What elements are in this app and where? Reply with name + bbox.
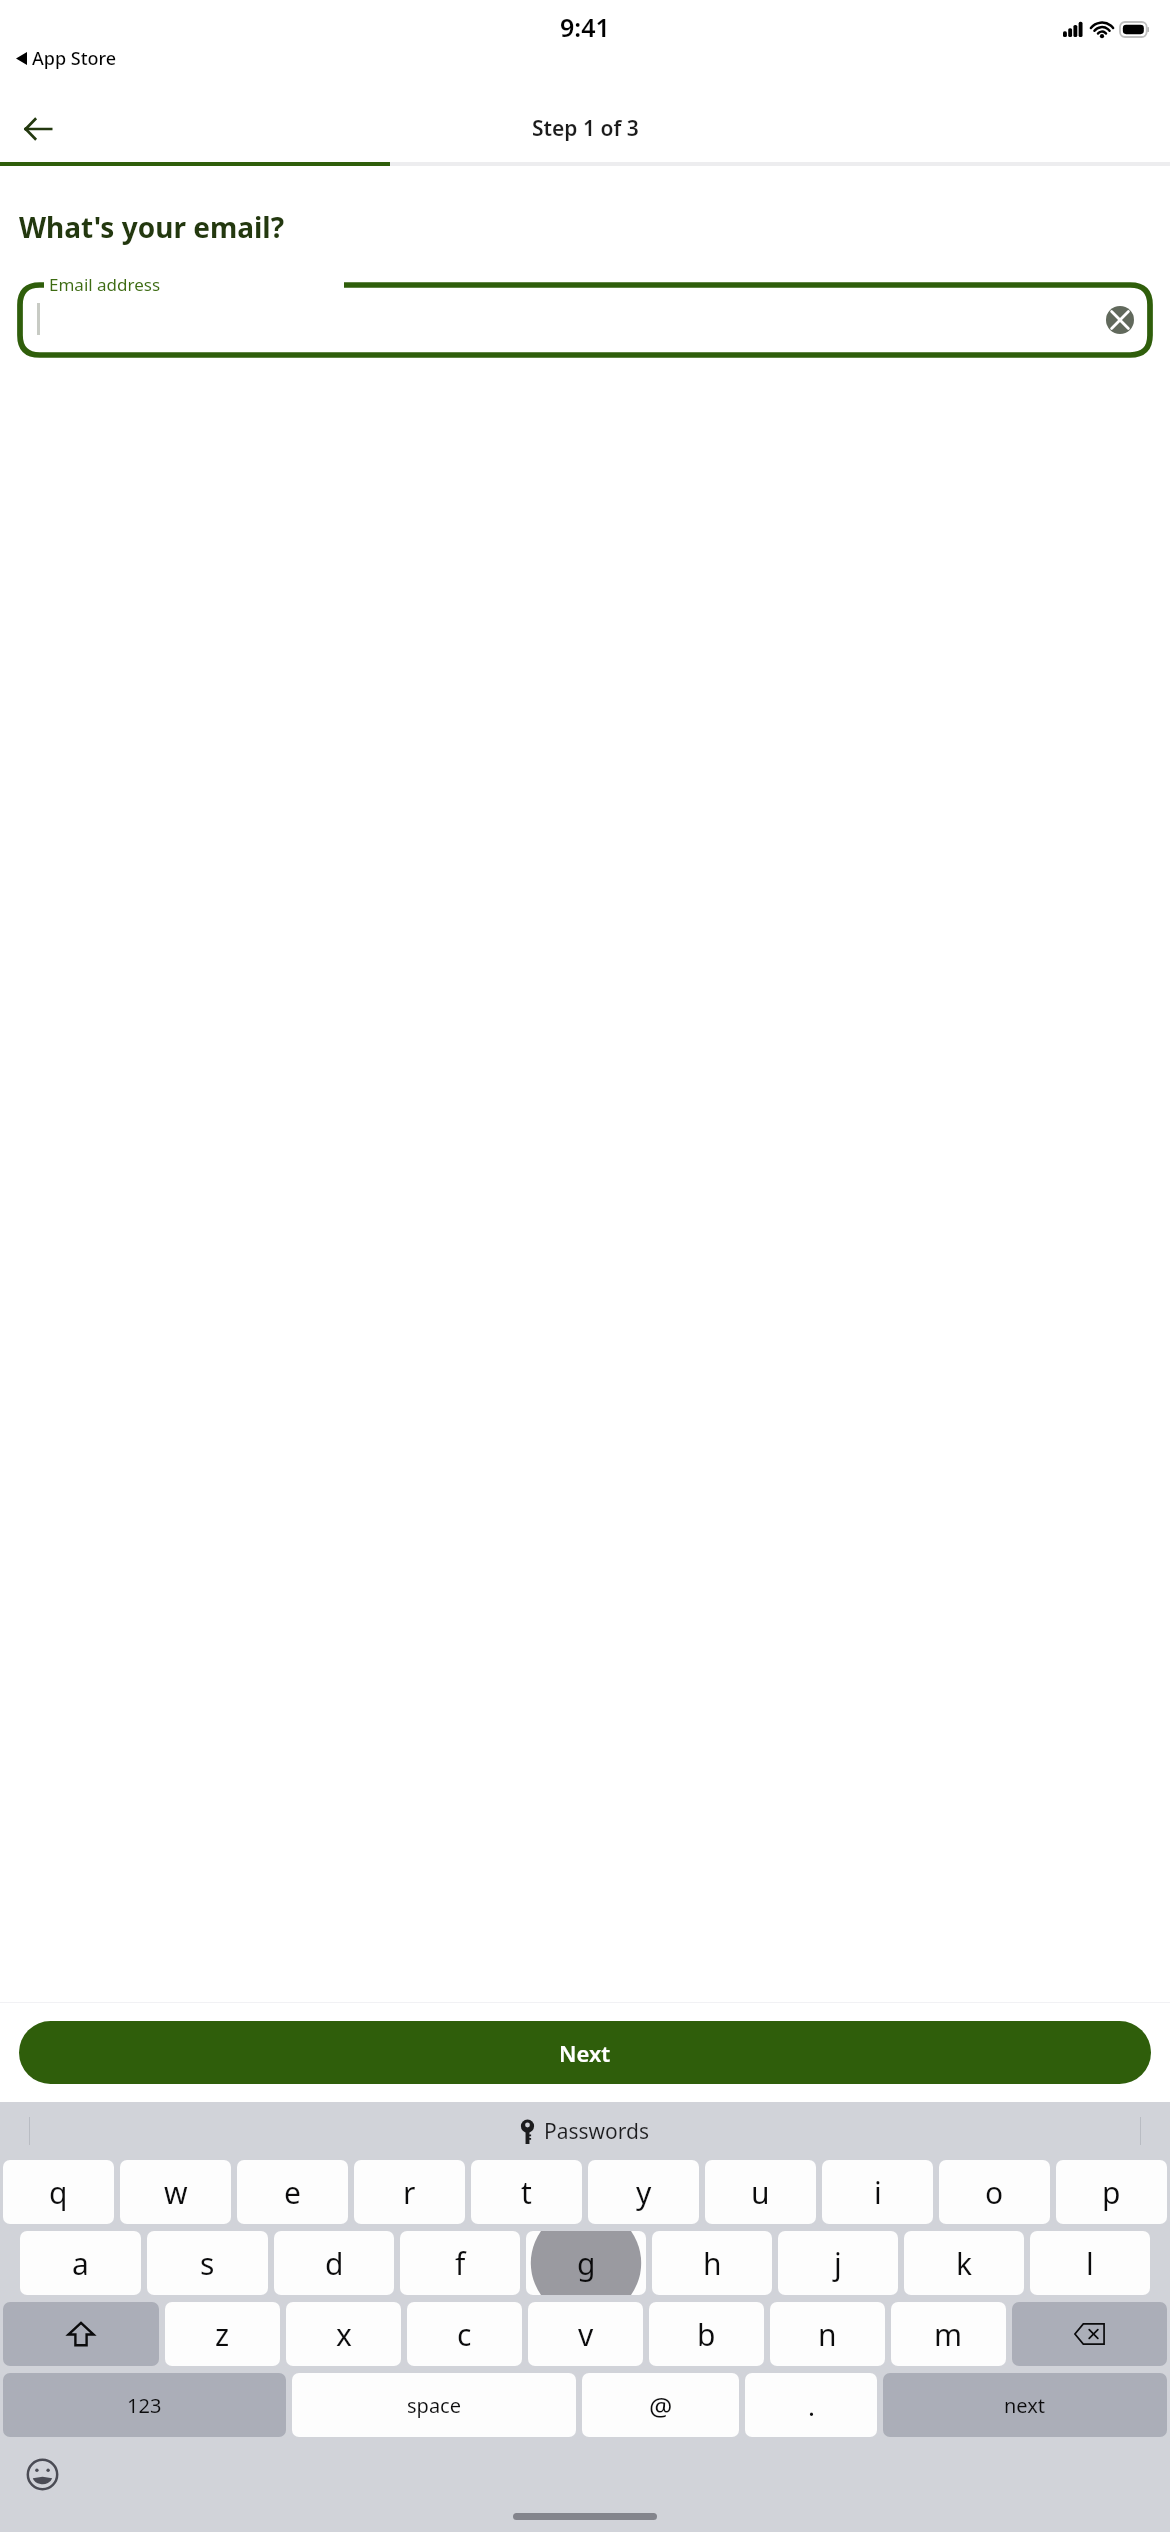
button[interactable]: s [147,2231,268,2295]
button[interactable]: j [778,2231,898,2295]
button[interactable]: e [237,2160,348,2224]
staticText: w [164,2172,188,2213]
staticText: n [818,2314,837,2355]
button[interactable]: g [526,2231,646,2295]
button[interactable]: z [165,2302,280,2366]
staticText: Passwords [544,2117,650,2146]
staticText: r [403,2172,416,2213]
staticText: s [200,2243,215,2284]
staticText: 9:41 [560,10,610,44]
button[interactable]: k [904,2231,1024,2295]
button[interactable]: x [286,2302,401,2366]
button[interactable]: @ [582,2373,739,2437]
staticText: q [49,2172,68,2213]
staticText: g [577,2243,596,2284]
staticText: c [457,2314,472,2355]
button[interactable]: Emoji [20,2452,64,2496]
button[interactable]: y [588,2160,699,2224]
staticText: v [578,2314,594,2355]
staticText: h [703,2243,722,2284]
staticText: l [1086,2243,1094,2284]
staticText: i [874,2172,882,2213]
staticText: Email address [49,273,161,296]
staticText: o [985,2172,1004,2213]
button[interactable]: h [652,2231,772,2295]
staticText: . [808,2388,815,2423]
staticText: What's your email? [19,208,285,246]
staticText: j [834,2243,842,2284]
button[interactable]: f [400,2231,520,2295]
staticText: m [934,2314,963,2355]
button[interactable]: 123 [3,2373,286,2437]
staticText: z [215,2314,230,2355]
staticText: p [1102,2172,1121,2213]
staticText: u [751,2172,770,2213]
button[interactable]: o [939,2160,1050,2224]
button[interactable]: n [770,2302,885,2366]
button[interactable]: Back [10,101,66,157]
button[interactable]: c [407,2302,522,2366]
staticText: k [956,2243,973,2284]
staticText: a [72,2243,89,2284]
staticText: d [325,2243,344,2284]
button[interactable]: d [274,2231,394,2295]
button[interactable]: Shift [3,2302,159,2366]
staticText: @ [649,2388,673,2423]
button[interactable]: space [292,2373,576,2437]
button[interactable]: v [528,2302,643,2366]
staticText: Step 1 of 3 [532,114,639,143]
button[interactable]: q [3,2160,114,2224]
button[interactable]: w [120,2160,231,2224]
button[interactable]: l [1030,2231,1150,2295]
button[interactable]: u [705,2160,816,2224]
button[interactable]: next [883,2373,1167,2437]
staticText: b [697,2314,716,2355]
button[interactable]: a [20,2231,141,2295]
button[interactable]: Backspace [1012,2302,1167,2366]
staticText: f [455,2243,466,2284]
button[interactable]: Next [19,2021,1151,2084]
staticText: e [284,2172,301,2213]
button[interactable]: m [891,2302,1006,2366]
staticText: Next [559,2038,611,2068]
button[interactable]: i [822,2160,933,2224]
staticText: next [1004,2392,1046,2419]
button[interactable]: . [745,2373,877,2437]
button[interactable]: b [649,2302,764,2366]
button[interactable]: p [1056,2160,1167,2224]
button[interactable]: t [471,2160,582,2224]
button[interactable]: r [354,2160,465,2224]
staticText: 123 [127,2392,162,2419]
staticText: x [336,2314,352,2355]
button[interactable]: Clear text [1104,304,1136,336]
staticText: space [407,2392,461,2419]
staticText: t [521,2172,532,2213]
staticText: y [636,2172,652,2213]
staticText: App Store [32,46,117,71]
button[interactable]: Passwords [520,2117,650,2146]
